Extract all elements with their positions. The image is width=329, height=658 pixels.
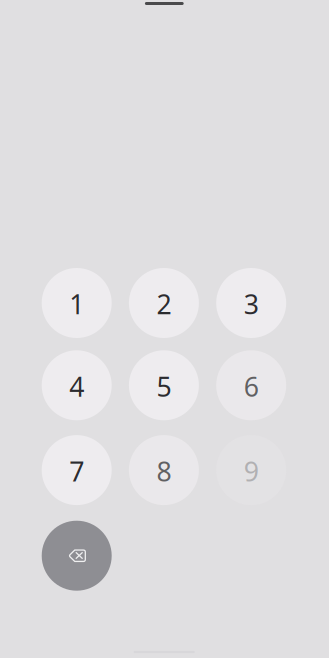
button[interactable]: Delete xyxy=(42,521,112,591)
staticText: 4 xyxy=(69,369,84,404)
button[interactable]: 4 xyxy=(42,350,112,420)
button[interactable]: 2 xyxy=(129,268,199,338)
staticText: 2 xyxy=(156,286,171,322)
staticText: 6 xyxy=(244,369,259,404)
staticText: 5 xyxy=(156,369,171,404)
staticText: 7 xyxy=(69,453,84,489)
button[interactable]: 5 xyxy=(129,350,199,420)
button[interactable]: 3 xyxy=(216,268,286,338)
button[interactable]: 9 xyxy=(216,435,286,505)
staticText: 8 xyxy=(156,453,171,489)
button[interactable]: 7 xyxy=(42,435,112,505)
button[interactable]: 6 xyxy=(216,350,286,420)
button[interactable]: 1 xyxy=(42,268,112,338)
staticText: 3 xyxy=(244,286,259,322)
staticText: 1 xyxy=(69,286,84,322)
button[interactable]: 8 xyxy=(129,435,199,505)
staticText: 9 xyxy=(244,453,259,489)
